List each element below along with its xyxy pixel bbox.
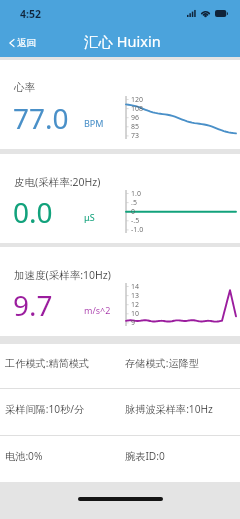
button[interactable]: 工作模式:精简模式 <box>0 344 125 388</box>
button[interactable]: 存储模式:运降型 <box>125 344 240 388</box>
staticText: -.5 <box>131 216 140 226</box>
button[interactable]: 腕表ID:0 <box>125 436 240 482</box>
button[interactable]: 心率 <box>0 60 240 149</box>
staticText: 12 <box>131 300 140 310</box>
staticText: -1.0 <box>131 225 144 235</box>
staticText: 皮电(采样率:20Hz) <box>14 175 101 189</box>
staticText: 腕表ID:0 <box>125 449 165 463</box>
staticText: 汇心 Huixin <box>84 31 161 51</box>
staticText: 0 <box>131 207 136 217</box>
staticText: 9 <box>131 318 136 328</box>
staticText: 77.0 <box>13 99 69 137</box>
staticText: 加速度(采样率:10Hz) <box>14 268 111 282</box>
staticText: 120 <box>131 95 144 105</box>
staticText: μS <box>84 211 95 223</box>
staticText: 14 <box>131 282 140 292</box>
staticText: 73 <box>131 131 140 141</box>
staticText: 10 <box>131 309 140 319</box>
staticText: 工作模式:精简模式 <box>5 356 90 370</box>
staticText: 1.0 <box>131 189 141 199</box>
button[interactable]: 采样间隔:10秒/分 <box>0 389 125 435</box>
staticText: m/s^2 <box>84 304 111 316</box>
staticText: 心率 <box>14 81 35 94</box>
staticText: 存储模式:运降型 <box>125 356 200 370</box>
staticText: 13 <box>131 291 140 301</box>
staticText: .5 <box>131 198 137 208</box>
staticText: 108 <box>131 104 144 114</box>
staticText: 9.7 <box>13 286 53 324</box>
staticText: BPM <box>84 117 104 129</box>
staticText: 电池:0% <box>5 449 43 463</box>
staticText: 4:52 <box>20 7 41 21</box>
staticText: 0.0 <box>13 193 53 231</box>
staticText: 采样间隔:10秒/分 <box>5 402 85 416</box>
staticText: 脉搏波采样率:10Hz <box>125 402 213 416</box>
button[interactable]: 加速度(采样率:10Hz) <box>0 247 240 336</box>
staticText: 返回 <box>17 37 36 49</box>
staticText: 96 <box>131 113 140 123</box>
button[interactable]: 电池:0% <box>0 436 125 482</box>
button[interactable]: 返回 <box>0 32 44 54</box>
button[interactable]: 皮电(采样率:20Hz) <box>0 154 240 243</box>
button[interactable]: 脉搏波采样率:10Hz <box>125 389 240 435</box>
staticText: 85 <box>131 122 140 132</box>
